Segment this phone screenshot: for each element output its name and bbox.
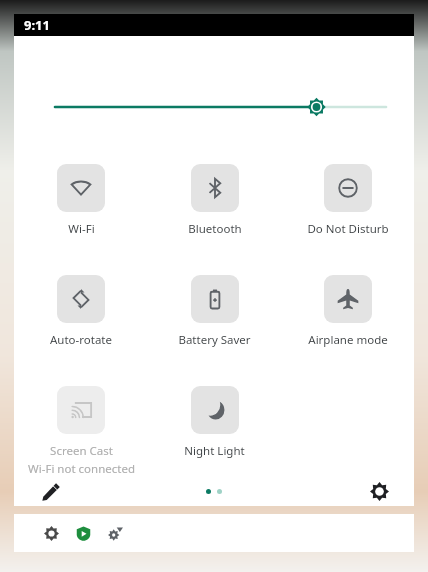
button[interactable]: Settings shortcut	[38, 520, 64, 546]
button[interactable]: Do Not Disturb	[281, 164, 414, 237]
button[interactable]: Night Light	[148, 386, 281, 459]
button[interactable]: Brightness	[14, 94, 414, 120]
button[interactable]: Network settings	[102, 520, 128, 546]
button[interactable]: Battery Saver	[148, 275, 281, 348]
button[interactable]: Wi-Fi	[14, 164, 148, 237]
staticText: Do Not Disturb	[307, 221, 389, 237]
staticText: Wi-Fi	[68, 221, 95, 237]
button[interactable]: Auto-rotate	[14, 275, 148, 348]
button[interactable]: Settings	[362, 477, 396, 506]
staticText: 9:11	[24, 16, 50, 34]
staticText: Night Light	[184, 443, 245, 459]
staticText: Screen Cast	[50, 443, 113, 459]
button[interactable]: Edit tiles	[34, 477, 68, 506]
staticText: Wi-Fi not connected	[28, 461, 135, 477]
staticText: Auto-rotate	[50, 332, 112, 348]
staticText: Battery Saver	[178, 332, 251, 348]
button[interactable]: Play Protect	[70, 520, 96, 546]
button[interactable]: Bluetooth	[148, 164, 281, 237]
button[interactable]: Screen Cast	[14, 386, 148, 477]
staticText: Airplane mode	[308, 332, 388, 348]
staticText: Bluetooth	[188, 221, 242, 237]
button[interactable]: Airplane mode	[281, 275, 414, 348]
